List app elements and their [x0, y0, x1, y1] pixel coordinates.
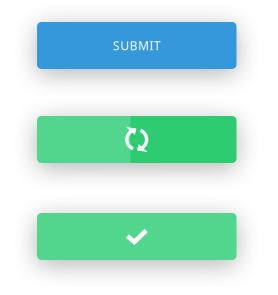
staticText: SUBMIT — [113, 37, 161, 53]
button[interactable]: Syncing — [37, 116, 236, 163]
button[interactable]: Done — [37, 213, 236, 260]
button[interactable]: SUBMIT — [37, 22, 236, 69]
